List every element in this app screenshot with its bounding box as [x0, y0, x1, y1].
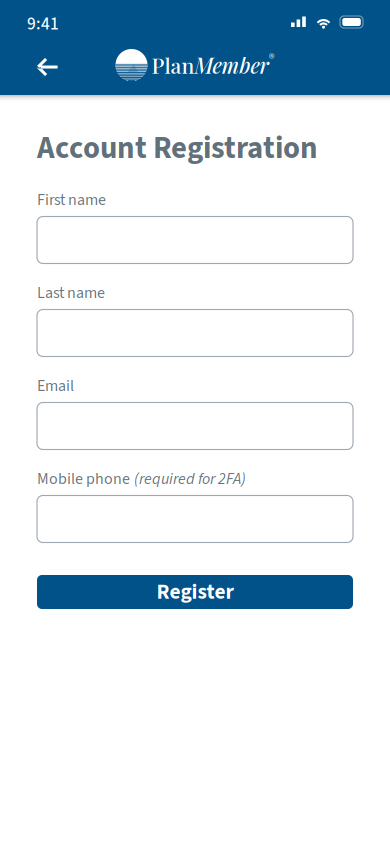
staticText: (required for 2FA): [134, 468, 246, 490]
staticText: Plan: [151, 51, 194, 79]
button[interactable]: Register: [37, 575, 353, 609]
staticText: 9:41: [27, 12, 59, 36]
staticText: First name: [37, 189, 106, 211]
button[interactable]: Back: [25, 43, 69, 87]
staticText: Member: [194, 51, 268, 79]
staticText: Register: [156, 577, 233, 607]
staticText: ®: [268, 51, 274, 63]
staticText: Email: [37, 375, 74, 397]
staticText: Mobile phone: [37, 468, 130, 490]
staticText: Last name: [37, 282, 105, 304]
staticText: Account Registration: [37, 127, 318, 170]
